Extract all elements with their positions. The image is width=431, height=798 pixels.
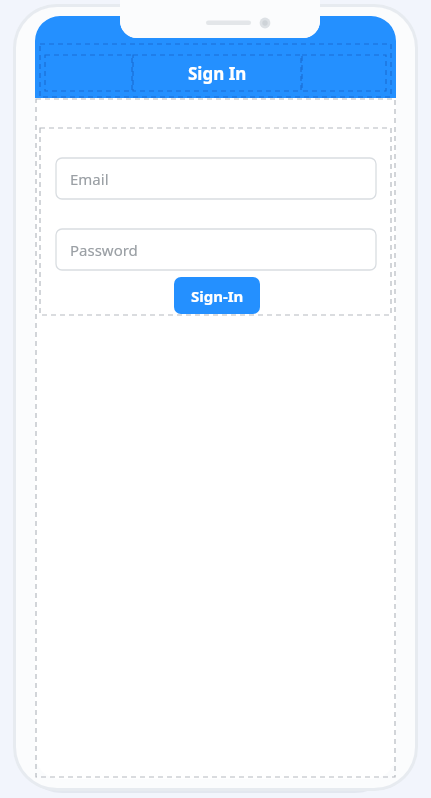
staticText: Password <box>70 240 138 260</box>
button[interactable]: Sign-In <box>174 277 260 314</box>
button[interactable]: Sign In <box>133 55 301 91</box>
button[interactable]: Previous tab <box>45 55 132 91</box>
button[interactable]: Email <box>56 158 376 199</box>
staticText: Email <box>70 169 109 189</box>
button[interactable]: Password <box>56 229 376 270</box>
button[interactable]: Next tab <box>302 55 386 91</box>
staticText: Sign In <box>188 62 247 85</box>
staticText: Sign-In <box>191 286 244 306</box>
